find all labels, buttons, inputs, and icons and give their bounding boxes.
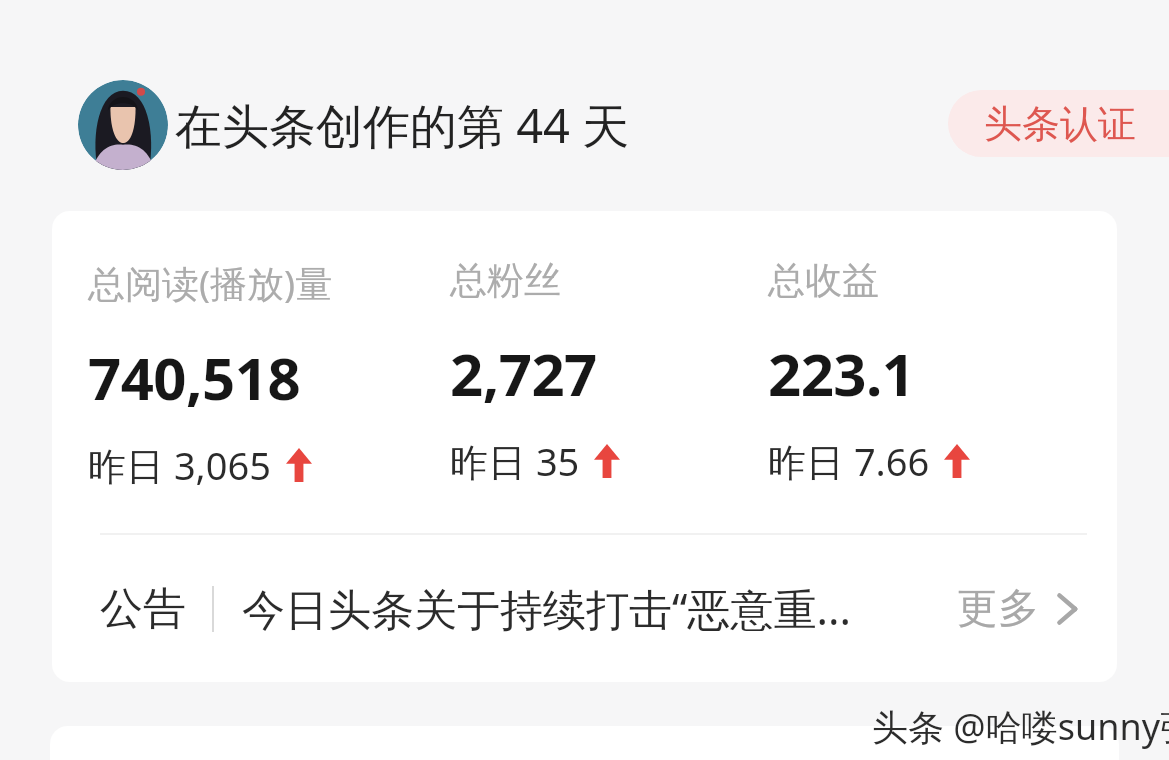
staticText: 223.1 xyxy=(768,334,915,413)
staticText: 总阅读(播放)量 xyxy=(88,257,333,308)
button[interactable]: 总阅读(播放)量 xyxy=(88,257,450,491)
staticText: 头条 @哈喽sunny张 xyxy=(872,702,1169,751)
staticText: 740,518 xyxy=(88,338,301,417)
button[interactable]: 总粉丝 xyxy=(450,257,768,487)
staticText: 总粉丝 xyxy=(450,257,561,304)
staticText: 今日头条关于持续打击“恶意重... xyxy=(242,579,852,638)
staticText: 总收益 xyxy=(768,257,879,304)
staticText: 在头条创作的第 44 天 xyxy=(175,93,630,157)
button[interactable]: 头条认证 xyxy=(948,90,1169,157)
button[interactable]: 公告 xyxy=(52,535,1117,682)
staticText: 头条认证 xyxy=(984,100,1136,148)
staticText: 公告 xyxy=(100,582,186,636)
staticText: 昨日 7.66 xyxy=(768,435,930,487)
staticText: 昨日 3,065 xyxy=(88,439,272,491)
staticText: 2,727 xyxy=(450,334,597,413)
staticText: 更多 xyxy=(957,583,1039,635)
button[interactable]: Profile avatar xyxy=(78,80,168,170)
other: More xyxy=(1055,589,1077,629)
button[interactable]: 总收益 xyxy=(768,257,1093,487)
staticText: 昨日 35 xyxy=(450,435,580,487)
